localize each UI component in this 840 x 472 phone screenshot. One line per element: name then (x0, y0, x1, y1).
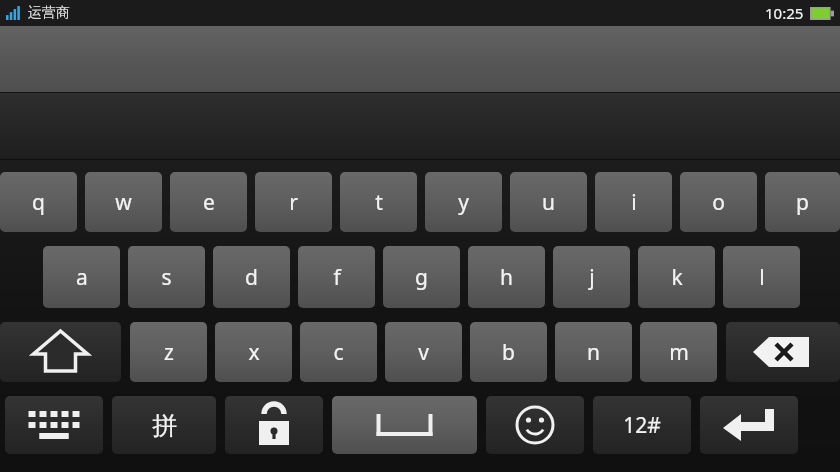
button[interactable]: Shift (0, 322, 121, 382)
button[interactable]: 拼 (112, 396, 216, 454)
staticText: i (631, 188, 637, 217)
button[interactable]: Emoji (486, 396, 584, 454)
staticText: r (289, 188, 298, 217)
staticText: d (245, 263, 258, 292)
button[interactable]: b (470, 322, 547, 382)
button[interactable]: u (510, 172, 587, 232)
button[interactable]: d (213, 246, 290, 308)
staticText: k (671, 263, 683, 292)
button[interactable]: m (640, 322, 717, 382)
staticText: n (587, 338, 600, 367)
staticText: y (458, 188, 469, 217)
button[interactable]: Lock (225, 396, 323, 454)
staticText: z (164, 338, 174, 367)
button[interactable]: w (85, 172, 162, 232)
button[interactable]: f (298, 246, 375, 308)
staticText: 运营商 (28, 4, 70, 22)
staticText: u (542, 188, 555, 217)
button[interactable]: l (723, 246, 800, 308)
button[interactable]: s (128, 246, 205, 308)
button[interactable]: e (170, 172, 247, 232)
staticText: s (161, 263, 172, 292)
staticText: v (418, 338, 429, 367)
button[interactable]: g (383, 246, 460, 308)
button[interactable]: x (215, 322, 292, 382)
button[interactable]: n (555, 322, 632, 382)
button[interactable]: t (340, 172, 417, 232)
staticText: w (115, 188, 132, 217)
staticText: h (500, 263, 513, 292)
button[interactable]: j (553, 246, 630, 308)
staticText: l (759, 263, 765, 292)
staticText: a (76, 263, 88, 292)
button[interactable]: y (425, 172, 502, 232)
button[interactable]: a (43, 246, 120, 308)
staticText: j (589, 263, 595, 292)
staticText: c (333, 338, 344, 367)
staticText: g (415, 263, 428, 292)
button[interactable]: v (385, 322, 462, 382)
button[interactable]: i (595, 172, 672, 232)
staticText: b (502, 338, 515, 367)
button[interactable]: Backspace (726, 322, 840, 382)
button[interactable]: o (680, 172, 757, 232)
button[interactable]: c (300, 322, 377, 382)
button[interactable]: r (255, 172, 332, 232)
button[interactable]: Enter (700, 396, 798, 454)
staticText: t (375, 188, 383, 217)
staticText: f (333, 263, 341, 292)
button[interactable]: 12# (593, 396, 691, 454)
button[interactable]: h (468, 246, 545, 308)
button[interactable]: Keyboard layout (5, 396, 103, 454)
staticText: p (796, 188, 809, 217)
button[interactable]: Space (332, 396, 477, 454)
staticText: o (712, 188, 725, 217)
staticText: 10:25 (765, 3, 804, 23)
staticText: m (669, 338, 689, 367)
button[interactable]: q (0, 172, 77, 232)
staticText: e (203, 188, 215, 217)
staticText: q (32, 188, 45, 217)
staticText: 12# (623, 411, 661, 440)
button[interactable]: p (765, 172, 840, 232)
staticText: x (248, 338, 260, 367)
button[interactable]: z (130, 322, 207, 382)
button[interactable]: k (638, 246, 715, 308)
staticText: 拼 (152, 410, 177, 441)
